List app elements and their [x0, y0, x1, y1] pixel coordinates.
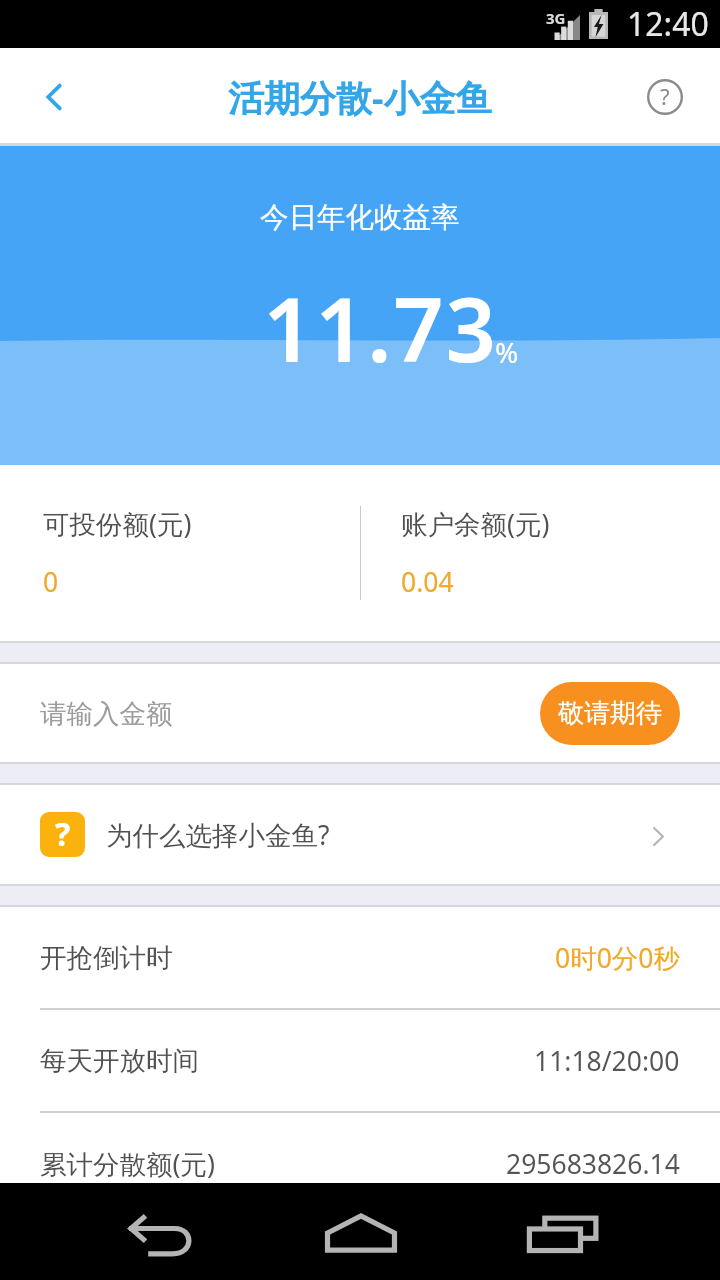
staticText: 12:40 [627, 2, 709, 46]
staticText: 11:18/20:00 [534, 1043, 680, 1079]
staticText: ? [55, 812, 71, 856]
staticText: ? [660, 81, 670, 111]
button[interactable]: 累计分散额(元) [0, 1113, 720, 1214]
button[interactable]: Recents [515, 1198, 611, 1270]
staticText: 每天开放时间 [40, 1044, 199, 1077]
staticText: 0.04 [401, 564, 454, 600]
button[interactable]: Help [639, 71, 691, 123]
staticText: 开抢倒计时 [40, 941, 173, 974]
staticText: 0时0分0秒 [555, 940, 680, 976]
staticText: % [495, 333, 519, 371]
staticText: 今日年化收益率 [260, 200, 460, 236]
button[interactable]: Back [114, 1199, 210, 1271]
button[interactable]: Back [24, 67, 84, 127]
staticText: 敬请期待 [558, 697, 662, 730]
staticText: 3G [546, 8, 566, 28]
button[interactable]: Home [313, 1197, 409, 1269]
staticText: 0 [43, 564, 59, 600]
staticText: 账户余额(元) [401, 506, 550, 542]
button[interactable]: 开抢倒计时 [0, 907, 720, 1008]
staticText: 活期分散-小金鱼 [228, 73, 492, 122]
button[interactable]: 每天开放时间 [0, 1010, 720, 1111]
button[interactable]: 敬请期待 [540, 682, 680, 745]
staticText: 累计分散额(元) [40, 1146, 215, 1182]
staticText: 295683826.14 [506, 1146, 680, 1182]
button[interactable]: ? [0, 785, 720, 884]
staticText: 可投份额(元) [43, 506, 192, 542]
staticText: 请输入金额 [40, 697, 173, 730]
staticText: 为什么选择小金鱼? [106, 817, 330, 853]
staticText: 11.73 [263, 268, 498, 388]
